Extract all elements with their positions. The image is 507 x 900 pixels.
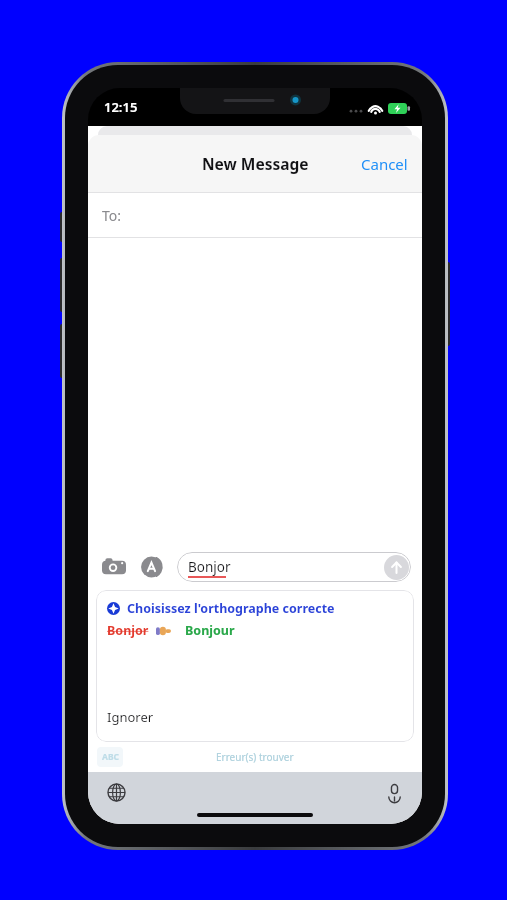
staticText: To:: [102, 206, 122, 225]
button[interactable]: Cancel: [347, 144, 422, 184]
button[interactable]: Erreur(s) trouver: [212, 746, 298, 768]
button[interactable]: Change keyboard: [101, 777, 131, 807]
staticText: 12:15: [104, 98, 138, 116]
staticText: Ignorer: [107, 708, 154, 726]
button[interactable]: To:: [88, 193, 422, 237]
button[interactable]: Bonjor: [177, 552, 411, 582]
staticText: ABC: [102, 751, 119, 763]
staticText: Cancel: [361, 154, 408, 174]
staticText: Bonjour: [185, 622, 235, 639]
button[interactable]: Bonjour: [185, 622, 235, 639]
staticText: Erreur(s) trouver: [216, 750, 294, 764]
button[interactable]: Ignorer: [96, 708, 414, 742]
button[interactable]: Send: [384, 555, 409, 580]
staticText: Bonjor: [188, 558, 231, 576]
button[interactable]: ABC: [97, 747, 123, 767]
staticText: Choisissez l'orthographe correcte: [127, 600, 335, 617]
button[interactable]: Camera: [99, 552, 129, 582]
staticText: Bonjor: [107, 622, 149, 639]
staticText: New Message: [202, 153, 309, 174]
button[interactable]: Dictate: [379, 777, 409, 807]
button[interactable]: Apps: [138, 552, 168, 582]
